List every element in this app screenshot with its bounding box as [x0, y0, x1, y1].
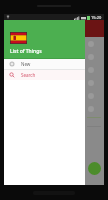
button[interactable]: Add [88, 162, 101, 175]
staticText: Search [21, 72, 36, 78]
staticText: List of Things [10, 48, 42, 55]
button[interactable]: New [4, 59, 85, 69]
staticText: 15:20 [91, 15, 102, 20]
staticText: New [21, 61, 31, 67]
button[interactable]: Search [4, 70, 85, 80]
